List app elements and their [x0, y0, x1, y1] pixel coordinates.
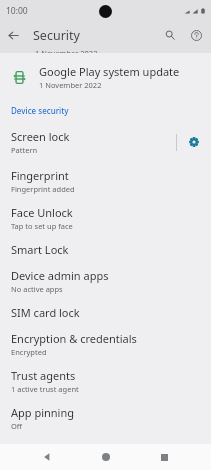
button[interactable]: Screen lock	[0, 127, 176, 157]
button[interactable]: Face Unlock	[0, 196, 211, 233]
button[interactable]: Encryption & credentials	[0, 322, 211, 359]
staticText: Fingerprint	[11, 168, 69, 183]
staticText: App pinning	[11, 405, 75, 420]
staticText: Screen lock	[11, 129, 70, 144]
button[interactable]: App pinning	[0, 396, 211, 433]
staticText: Encryption & credentials	[11, 331, 137, 346]
button[interactable]: Smart Lock	[0, 233, 211, 259]
staticText: Security	[33, 27, 80, 44]
staticText: Pattern	[11, 145, 38, 155]
staticText: Off	[11, 421, 23, 431]
staticText: 1 active trust agent	[11, 384, 79, 394]
staticText: Device admin apps	[11, 268, 109, 283]
button[interactable]: Device admin apps	[0, 259, 211, 296]
button[interactable]: Navigate up	[0, 22, 26, 48]
staticText: 10:00	[6, 5, 28, 17]
button[interactable]: Back	[35, 445, 59, 469]
button[interactable]: Trust agents	[0, 359, 211, 396]
staticText: Device security	[11, 105, 69, 116]
staticText: Face Unlock	[11, 205, 73, 220]
button[interactable]: SIM card lock	[0, 296, 211, 322]
staticText: No active apps	[11, 284, 63, 294]
button[interactable]: Google Play system update	[0, 61, 211, 93]
staticText: SIM card lock	[11, 305, 80, 320]
button[interactable]: Fingerprint	[0, 159, 211, 196]
staticText: Trust agents	[11, 368, 76, 383]
staticText: Google Play system update	[39, 64, 180, 79]
staticText: Smart Lock	[11, 242, 69, 257]
staticText: 1 November 2022	[39, 80, 102, 90]
button[interactable]: Help	[183, 22, 209, 48]
button[interactable]: 1 November 2022	[0, 48, 211, 53]
staticText: 1 November 2022	[35, 48, 98, 53]
staticText: Encrypted	[11, 347, 47, 357]
staticText: Tap to set up face	[11, 221, 73, 231]
button[interactable]: Recent apps	[152, 445, 176, 469]
staticText: Fingerprint added	[11, 184, 75, 194]
button[interactable]: Search	[157, 22, 183, 48]
button[interactable]: Home	[94, 445, 118, 469]
button[interactable]: Screen lock settings	[177, 125, 211, 159]
